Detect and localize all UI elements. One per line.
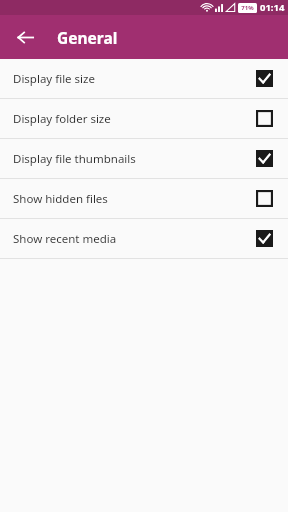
staticText: General bbox=[57, 27, 118, 48]
button[interactable]: Show hidden files bbox=[0, 179, 288, 218]
button[interactable]: Back bbox=[12, 24, 39, 51]
staticText: Display file thumbnails bbox=[13, 151, 136, 167]
staticText: Display file size bbox=[13, 71, 95, 87]
staticText: 01:14 bbox=[260, 1, 285, 14]
staticText: Show recent media bbox=[13, 231, 117, 247]
button[interactable]: Display file size bbox=[0, 59, 288, 98]
button[interactable]: Display file thumbnails bbox=[0, 139, 288, 178]
button[interactable]: Show recent media bbox=[0, 219, 288, 258]
staticText: 71% bbox=[241, 4, 254, 12]
staticText: Show hidden files bbox=[13, 191, 108, 207]
button[interactable]: Display folder size bbox=[0, 99, 288, 138]
staticText: Display folder size bbox=[13, 111, 111, 127]
